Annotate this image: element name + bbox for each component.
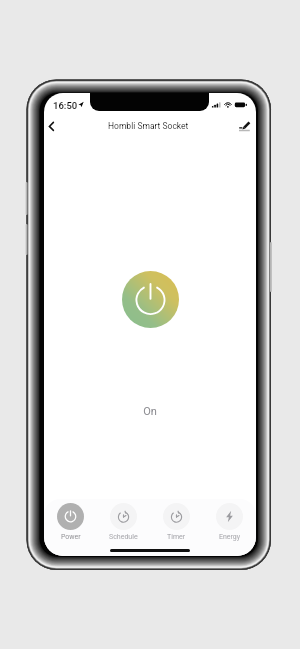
staticText: Timer xyxy=(167,533,186,541)
staticText: Energy xyxy=(219,533,241,541)
button[interactable]: Timer xyxy=(150,499,203,541)
button[interactable]: Energy xyxy=(203,499,256,541)
staticText: 16:50 xyxy=(53,100,78,111)
button[interactable]: Back xyxy=(44,111,70,137)
button[interactable]: Edit xyxy=(230,111,256,137)
staticText: Schedule xyxy=(109,533,138,541)
button[interactable]: Power toggle xyxy=(122,271,179,328)
button[interactable]: Power xyxy=(44,499,97,541)
staticText: Power xyxy=(61,533,81,541)
button[interactable]: Schedule xyxy=(97,499,150,541)
staticText: Hombli Smart Socket xyxy=(108,121,189,131)
staticText: On xyxy=(44,405,256,418)
